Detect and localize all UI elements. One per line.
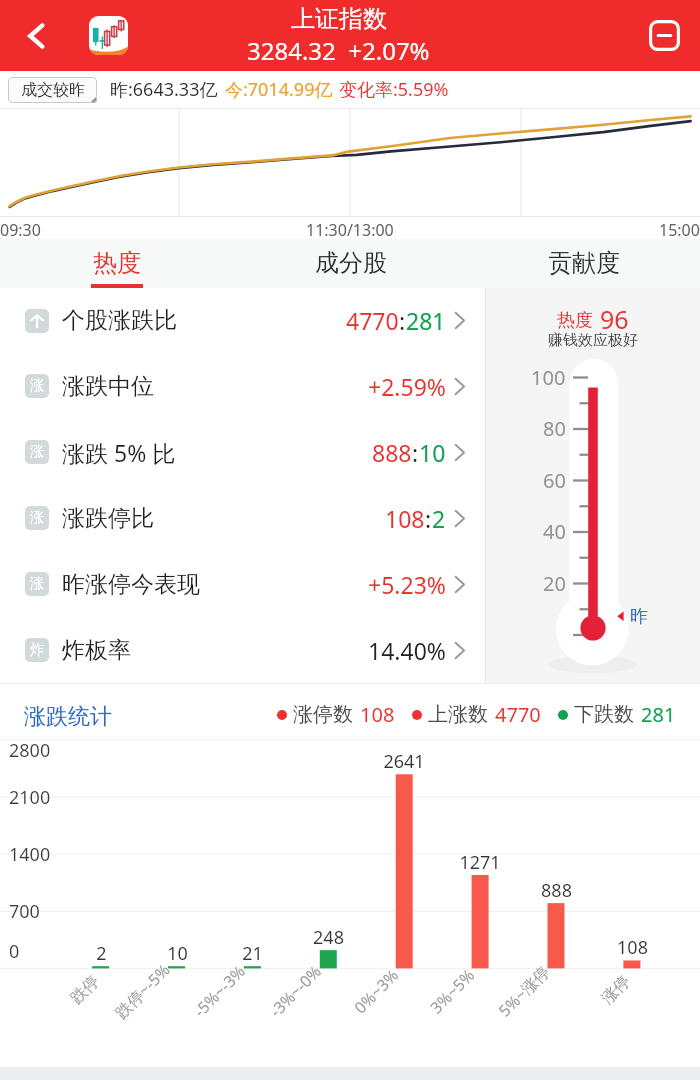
button[interactable]: 炸 (0, 617, 485, 683)
staticText: 100 (531, 364, 566, 391)
staticText: 21 (242, 941, 263, 966)
staticText: 上证指数 (291, 4, 387, 34)
staticText: : (425, 503, 432, 534)
staticText: 跌停~-5% (110, 959, 175, 1023)
staticText: 108 (385, 503, 425, 534)
button[interactable]: 成交较昨 (8, 77, 97, 103)
button[interactable]: 涨 (0, 419, 485, 485)
staticText: : (412, 437, 419, 468)
staticText: 281 (641, 701, 676, 728)
staticText: 3284.32 +2.07% (247, 34, 430, 67)
staticText: 96 (600, 302, 629, 334)
staticText: 1271 (459, 850, 501, 875)
staticText: 涨 (30, 443, 44, 461)
staticText: 11:30/13:00 (306, 219, 394, 241)
staticText: 108 (617, 935, 648, 960)
staticText: 3%~5% (425, 964, 480, 1018)
staticText: -3%~-0% (265, 960, 326, 1022)
staticText: 个股涨跌比 (62, 306, 177, 335)
staticText: 2100 (9, 785, 51, 810)
staticText: 涨 (30, 575, 44, 593)
staticText: +5.23% (368, 569, 446, 600)
staticText: 热度 (93, 248, 141, 278)
staticText: 上涨数 (428, 702, 488, 727)
staticText: 281 (406, 305, 446, 336)
button[interactable]: 涨 (0, 353, 485, 419)
staticText: 2 (432, 503, 446, 534)
staticText: : (399, 305, 406, 336)
staticText: 108 (360, 701, 395, 728)
staticText: 888 (372, 437, 412, 468)
button[interactable]: Remove from watchlist (628, 0, 700, 71)
staticText: 成分股 (315, 248, 387, 278)
button[interactable]: 涨 (0, 485, 485, 551)
button[interactable]: Back (0, 0, 72, 71)
staticText: 涨 (30, 509, 44, 527)
staticText: 2800 (9, 738, 51, 763)
staticText: 昨:6643.33亿 (110, 77, 218, 102)
staticText: 贡献度 (548, 248, 620, 278)
button[interactable]: 个股涨跌比 (0, 288, 485, 353)
button[interactable]: 成分股 (234, 239, 467, 288)
staticText: 涨跌 5% 比 (62, 437, 176, 468)
button[interactable]: 贡献度 (467, 239, 700, 288)
staticText: 成交较昨 (21, 80, 85, 100)
staticText: 15:00 (659, 219, 700, 241)
staticText: 昨 (630, 605, 648, 628)
staticText: 涨停 (598, 972, 634, 1008)
staticText: 炸板率 (62, 636, 131, 665)
staticText: 涨停数 (293, 702, 353, 727)
button[interactable]: 涨 (0, 551, 485, 617)
button[interactable]: App (89, 16, 128, 55)
staticText: 涨跌中位 (62, 372, 154, 401)
button[interactable]: 热度 (0, 239, 234, 288)
staticText: 热度 (557, 309, 593, 332)
staticText: 涨跌停比 (62, 504, 154, 533)
staticText: 涨跌统计 (24, 703, 112, 731)
staticText: 20 (543, 570, 566, 597)
staticText: 2 (96, 941, 107, 966)
staticText: 变化率:5.59% (339, 77, 449, 102)
staticText: 0%~3% (349, 964, 404, 1018)
staticText: 4770 (495, 701, 541, 728)
staticText: 40 (543, 518, 566, 545)
staticText: 60 (543, 467, 566, 494)
staticText: 赚钱效应极好 (548, 331, 638, 350)
staticText: -5%~-3% (189, 960, 250, 1022)
staticText: 2641 (383, 749, 425, 774)
staticText: 09:30 (0, 219, 41, 241)
staticText: 10 (167, 941, 188, 966)
staticText: 4770 (346, 305, 399, 336)
staticText: +2.59% (368, 371, 446, 402)
staticText: 10 (419, 437, 446, 468)
staticText: 跌停 (67, 972, 103, 1008)
staticText: 炸 (30, 641, 44, 659)
staticText: 700 (9, 899, 40, 924)
staticText: 80 (543, 415, 566, 442)
staticText: 涨 (30, 377, 44, 395)
staticText: 5%~涨停 (494, 961, 554, 1021)
staticText: 1400 (9, 842, 51, 867)
staticText: 888 (541, 878, 572, 903)
staticText: 248 (313, 925, 344, 950)
staticText: 今:7014.99亿 (225, 77, 333, 102)
staticText: 14.40% (368, 635, 446, 666)
staticText: 0 (9, 939, 20, 964)
staticText: 昨涨停今表现 (62, 570, 200, 599)
staticText: 下跌数 (574, 702, 634, 727)
